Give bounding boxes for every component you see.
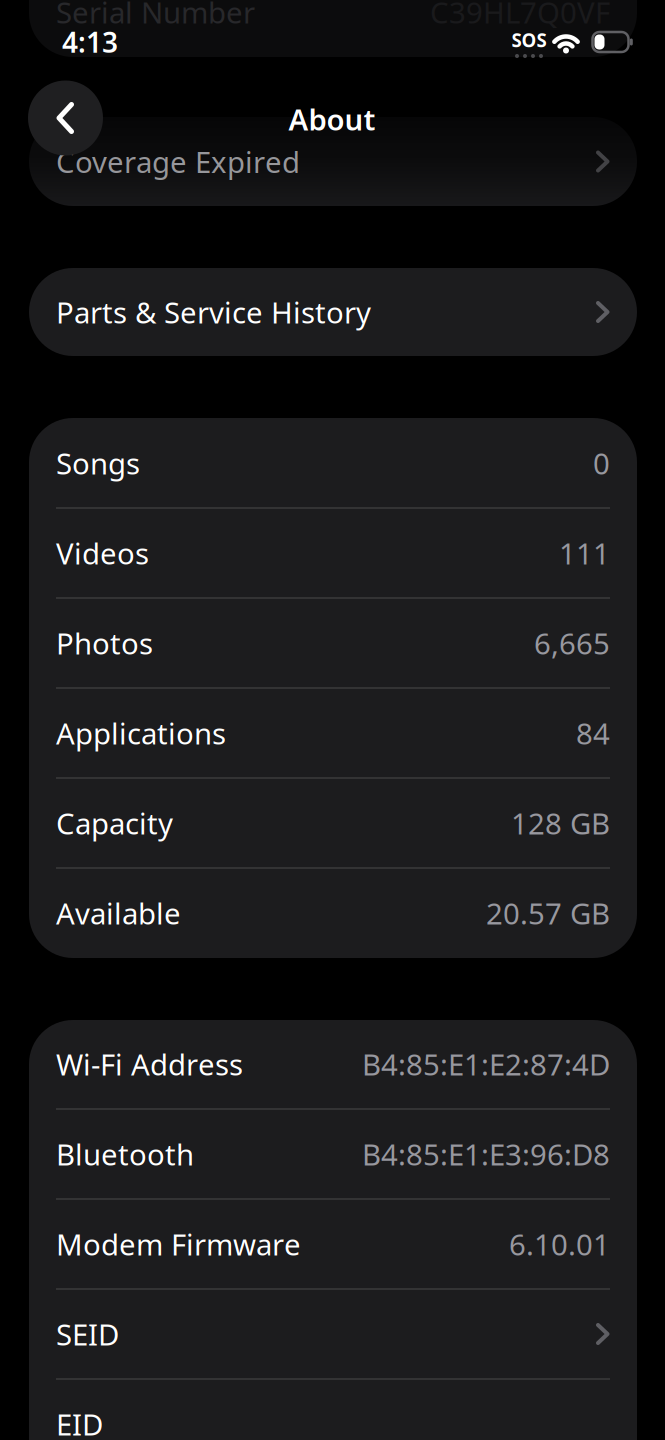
- staticText: 111: [559, 533, 610, 572]
- staticText: Serial Number: [56, 0, 255, 31]
- staticText: Available: [56, 893, 181, 932]
- staticText: Capacity: [56, 803, 173, 842]
- button[interactable]: Coverage Expired: [29, 117, 637, 206]
- staticText: Videos: [56, 533, 149, 572]
- staticText: Photos: [56, 623, 153, 662]
- button[interactable]: SEID: [56, 1289, 610, 1379]
- button[interactable]: Parts & Service History: [29, 268, 637, 356]
- staticText: 128 GB: [511, 803, 610, 842]
- staticText: SOS: [511, 28, 546, 52]
- staticText: 6.10.01: [509, 1224, 610, 1263]
- staticText: SEID: [56, 1314, 119, 1353]
- staticText: Wi-Fi Address: [56, 1044, 243, 1083]
- staticText: B4:85:E1:E3:96:D8: [362, 1134, 610, 1173]
- staticText: 20.57 GB: [486, 893, 610, 932]
- staticText: 0: [593, 443, 610, 482]
- staticText: About: [288, 99, 375, 138]
- staticText: Bluetooth: [56, 1134, 194, 1173]
- staticText: Applications: [56, 713, 226, 752]
- staticText: 6,665: [534, 623, 610, 662]
- staticText: B4:85:E1:E2:87:4D: [362, 1044, 610, 1083]
- staticText: Coverage Expired: [56, 142, 300, 181]
- staticText: C39HL7Q0VF: [430, 0, 610, 31]
- staticText: 4:13: [62, 23, 118, 61]
- staticText: Songs: [56, 443, 140, 482]
- button[interactable]: Back: [28, 80, 103, 155]
- staticText: Modem Firmware: [56, 1224, 301, 1263]
- staticText: EID: [56, 1404, 103, 1440]
- staticText: Parts & Service History: [56, 292, 371, 331]
- staticText: 84: [576, 713, 610, 752]
